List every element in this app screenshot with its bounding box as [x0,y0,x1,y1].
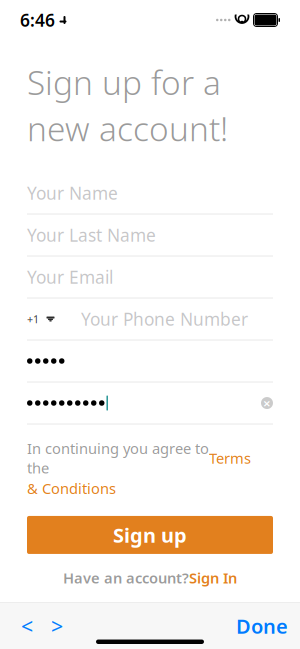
button[interactable]: & Conditions [27,478,273,498]
button[interactable]: Previous field [12,606,42,646]
staticText: +1 [27,312,39,326]
staticText: Terms [209,448,251,468]
button[interactable]: Have an account? [63,568,237,587]
staticText: × [263,394,271,412]
staticText: Have an account? [63,568,189,587]
button[interactable]: Terms [209,448,251,468]
staticText: Your Email [27,265,113,288]
staticText: 6:46 [20,8,55,31]
staticText: Your Phone Number [81,307,248,330]
button[interactable]: Your Last Name [27,214,273,256]
staticText: Sign up for a [27,60,221,104]
staticText: Done [236,613,288,639]
staticText: new account! [27,106,228,151]
button[interactable]: Your Name [27,172,273,214]
button[interactable]: Your Email [27,256,273,298]
button[interactable] [27,340,273,382]
staticText: In continuing you agree to the [27,438,209,477]
staticText: Sign up [113,522,187,548]
staticText: < [21,612,33,640]
staticText: Your Name [27,181,118,204]
button[interactable]: Done [236,606,288,646]
button[interactable]: Next field [42,606,72,646]
staticText: > [51,612,63,640]
button[interactable]: × [27,382,273,424]
button[interactable]: Sign up [27,516,273,554]
staticText: Sign In [189,568,237,587]
staticText: & Conditions [27,478,116,498]
button[interactable]: +1 [27,298,273,340]
staticText: Your Last Name [27,223,156,246]
